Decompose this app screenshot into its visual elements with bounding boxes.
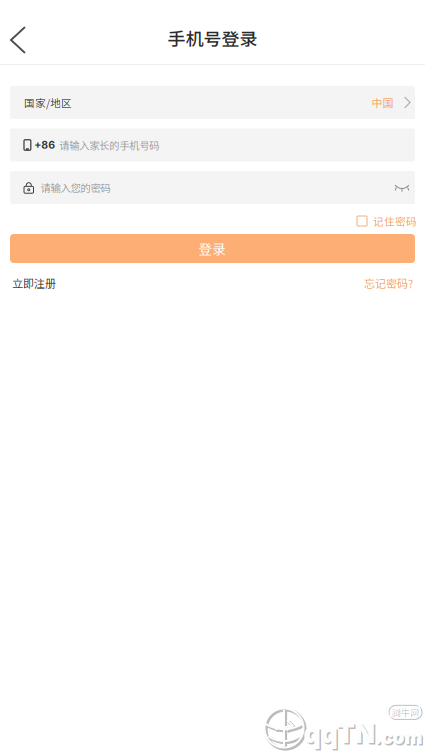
staticText: 忘记密码?: [364, 275, 413, 291]
staticText: 登录: [198, 239, 226, 258]
staticText: qqTN: [303, 717, 374, 749]
button[interactable]: 记住密码: [357, 210, 417, 232]
staticText: 腾牛网: [392, 706, 419, 719]
button[interactable]: Back: [0, 16, 43, 64]
staticText: +86: [34, 139, 55, 151]
staticText: 国家/地区: [24, 95, 72, 110]
staticText: .com: [376, 727, 424, 750]
button[interactable]: 国家/地区: [10, 86, 415, 119]
staticText: 中国: [371, 94, 393, 110]
staticText: 立即注册: [12, 275, 56, 291]
staticText: 记住密码: [373, 213, 417, 229]
staticText: qqTN: [305, 718, 376, 751]
staticText: 请输入家长的手机号码: [59, 137, 159, 152]
staticText: .com: [374, 725, 422, 748]
button[interactable]: 立即注册: [12, 275, 56, 291]
button[interactable]: 忘记密码?: [364, 275, 413, 291]
button[interactable]: Show password: [387, 178, 409, 196]
button[interactable]: 登录: [10, 234, 415, 263]
staticText: 手机号登录: [167, 25, 257, 51]
staticText: 腾牛网: [390, 704, 417, 717]
staticText: 请输入您的密码: [40, 180, 110, 195]
